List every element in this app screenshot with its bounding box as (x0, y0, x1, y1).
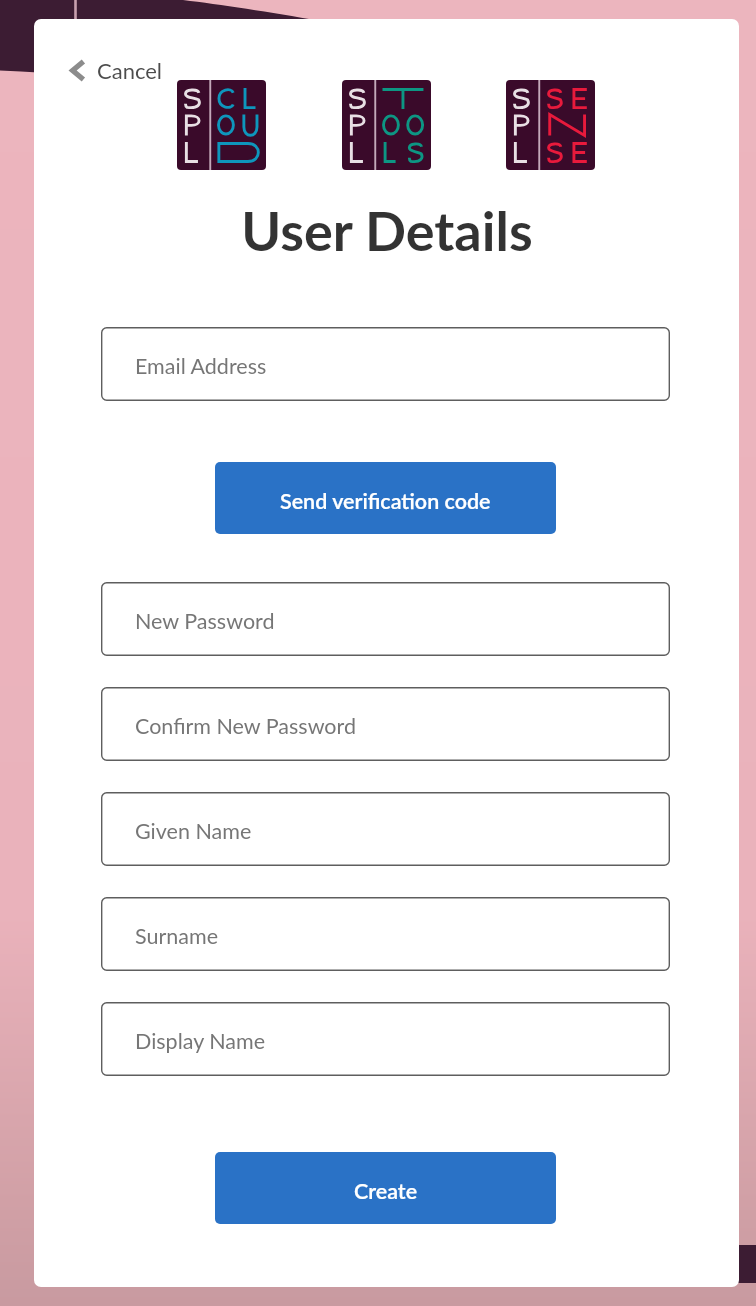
button[interactable]: Send verification code (215, 462, 556, 534)
staticText: Cancel (97, 57, 163, 83)
staticText: User Details (241, 198, 533, 263)
button[interactable]: Confirm New Password (101, 687, 670, 761)
staticText: Display Name (135, 1028, 266, 1054)
staticText: Given Name (135, 818, 252, 844)
staticText: New Password (135, 608, 275, 634)
staticText: Email Address (135, 353, 267, 379)
button[interactable]: Create (215, 1152, 556, 1224)
button[interactable]: SPL Sense (506, 80, 595, 170)
staticText: Confirm New Password (135, 713, 357, 739)
staticText: Surname (135, 923, 218, 949)
button[interactable]: Email Address (101, 327, 670, 401)
staticText: Send verification code (280, 488, 491, 514)
button[interactable]: Given Name (101, 792, 670, 866)
button[interactable]: Cancel (64, 52, 169, 88)
button[interactable]: SPL Cloud (177, 80, 266, 170)
staticText: Create (354, 1178, 418, 1204)
button[interactable]: SPL Tools (342, 80, 431, 170)
button[interactable]: Surname (101, 897, 670, 971)
button[interactable]: New Password (101, 582, 670, 656)
button[interactable]: Display Name (101, 1002, 670, 1076)
